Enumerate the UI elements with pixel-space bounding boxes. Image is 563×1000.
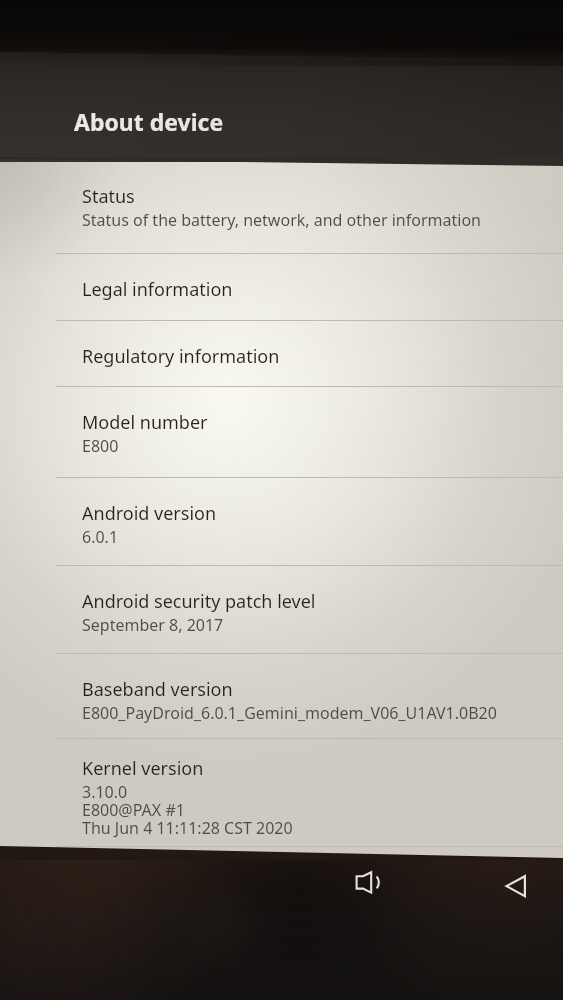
button[interactable]: Status	[0, 162, 563, 254]
button[interactable]: Volume	[348, 864, 384, 900]
staticText: 3.10.0 E800@PAX #1 Thu Jun 4 11:11:28 CS…	[82, 781, 293, 839]
staticText: Status	[82, 184, 135, 209]
staticText: 6.0.1	[82, 526, 119, 548]
staticText: About device	[74, 106, 224, 137]
button[interactable]: Kernel version	[0, 739, 563, 847]
staticText: Status of the battery, network, and othe…	[82, 209, 481, 231]
staticText: Android security patch level	[82, 589, 316, 614]
staticText: Kernel version	[82, 756, 204, 781]
button[interactable]: Baseband version	[0, 654, 563, 739]
staticText: Regulatory information	[82, 344, 280, 369]
button[interactable]: Model number	[0, 387, 563, 478]
staticText: Model number	[82, 410, 208, 435]
button[interactable]: Back	[498, 864, 534, 900]
button[interactable]: Legal information	[0, 254, 563, 321]
staticText: Legal information	[82, 277, 233, 302]
button[interactable]: Regulatory information	[0, 321, 563, 387]
staticText: September 8, 2017	[82, 614, 224, 636]
staticText: Baseband version	[82, 677, 233, 702]
button[interactable]: Android version	[0, 478, 563, 566]
staticText: E800_PayDroid_6.0.1_Gemini_modem_V06_U1A…	[82, 702, 497, 724]
staticText: Android version	[82, 501, 217, 526]
staticText: E800	[82, 435, 119, 457]
button[interactable]: Android security patch level	[0, 566, 563, 654]
